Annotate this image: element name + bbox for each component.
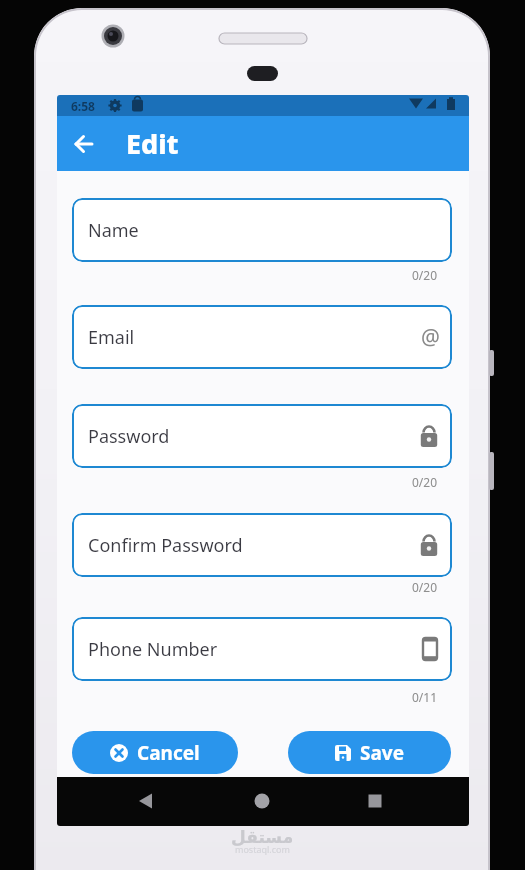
staticText: 6:58 <box>71 98 95 114</box>
staticText: mostaql.com <box>235 843 290 855</box>
staticText: 0/20 <box>412 267 438 283</box>
staticText: Edit <box>126 125 179 162</box>
staticText: 0/11 <box>412 689 438 705</box>
button[interactable]: Password <box>72 404 452 468</box>
button[interactable]: Phone Number <box>72 617 452 681</box>
staticText: @ <box>421 323 440 352</box>
staticText: Cancel <box>137 740 200 766</box>
button[interactable] <box>248 787 276 815</box>
staticText: Name <box>88 218 139 243</box>
staticText: مستقل <box>231 827 294 847</box>
staticText: Confirm Password <box>88 533 243 558</box>
button[interactable] <box>361 787 389 815</box>
staticText: Save <box>360 740 405 766</box>
staticText: Email <box>88 325 135 350</box>
staticText: Phone Number <box>88 637 218 662</box>
button[interactable]: Email <box>72 305 452 369</box>
staticText: 0/20 <box>412 579 438 595</box>
staticText: Password <box>88 424 170 449</box>
staticText: 0/20 <box>412 474 438 490</box>
button[interactable]: Name <box>72 198 452 262</box>
button[interactable] <box>71 134 97 160</box>
button[interactable]: Confirm Password <box>72 513 452 577</box>
button[interactable] <box>132 787 160 815</box>
button[interactable]: Cancel <box>72 731 238 774</box>
button[interactable]: Save <box>288 731 451 774</box>
